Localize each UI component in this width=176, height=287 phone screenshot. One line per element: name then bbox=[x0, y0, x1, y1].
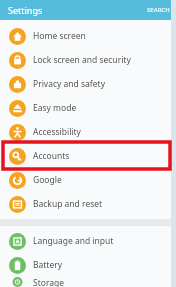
staticText: Easy mode bbox=[33, 102, 77, 114]
staticText: Settings bbox=[8, 4, 43, 16]
button[interactable]: Backup and reset bbox=[0, 192, 176, 216]
staticText: Accounts bbox=[33, 150, 70, 162]
staticText: Google bbox=[33, 174, 62, 186]
staticText: Language and input bbox=[33, 235, 114, 247]
staticText: Storage bbox=[33, 277, 65, 287]
button[interactable]: Accounts bbox=[0, 144, 176, 168]
staticText: Lock screen and security bbox=[33, 54, 131, 66]
button[interactable]: Google bbox=[0, 168, 176, 192]
button[interactable]: SEARCH bbox=[141, 2, 176, 18]
button[interactable]: Home screen bbox=[0, 24, 176, 48]
staticText: Accessibility bbox=[33, 126, 81, 138]
button[interactable]: Lock screen and security bbox=[0, 48, 176, 72]
button[interactable]: Battery bbox=[0, 253, 176, 277]
staticText: SEARCH bbox=[147, 6, 170, 14]
button[interactable]: Language and input bbox=[0, 229, 176, 253]
button[interactable]: Easy mode bbox=[0, 96, 176, 120]
button[interactable]: Storage bbox=[0, 277, 176, 287]
staticText: Home screen bbox=[33, 30, 86, 42]
staticText: Battery bbox=[33, 259, 63, 271]
staticText: Privacy and safety bbox=[33, 78, 105, 90]
button[interactable]: Accessibility bbox=[0, 120, 176, 144]
button[interactable]: Privacy and safety bbox=[0, 72, 176, 96]
staticText: Backup and reset bbox=[33, 198, 103, 210]
